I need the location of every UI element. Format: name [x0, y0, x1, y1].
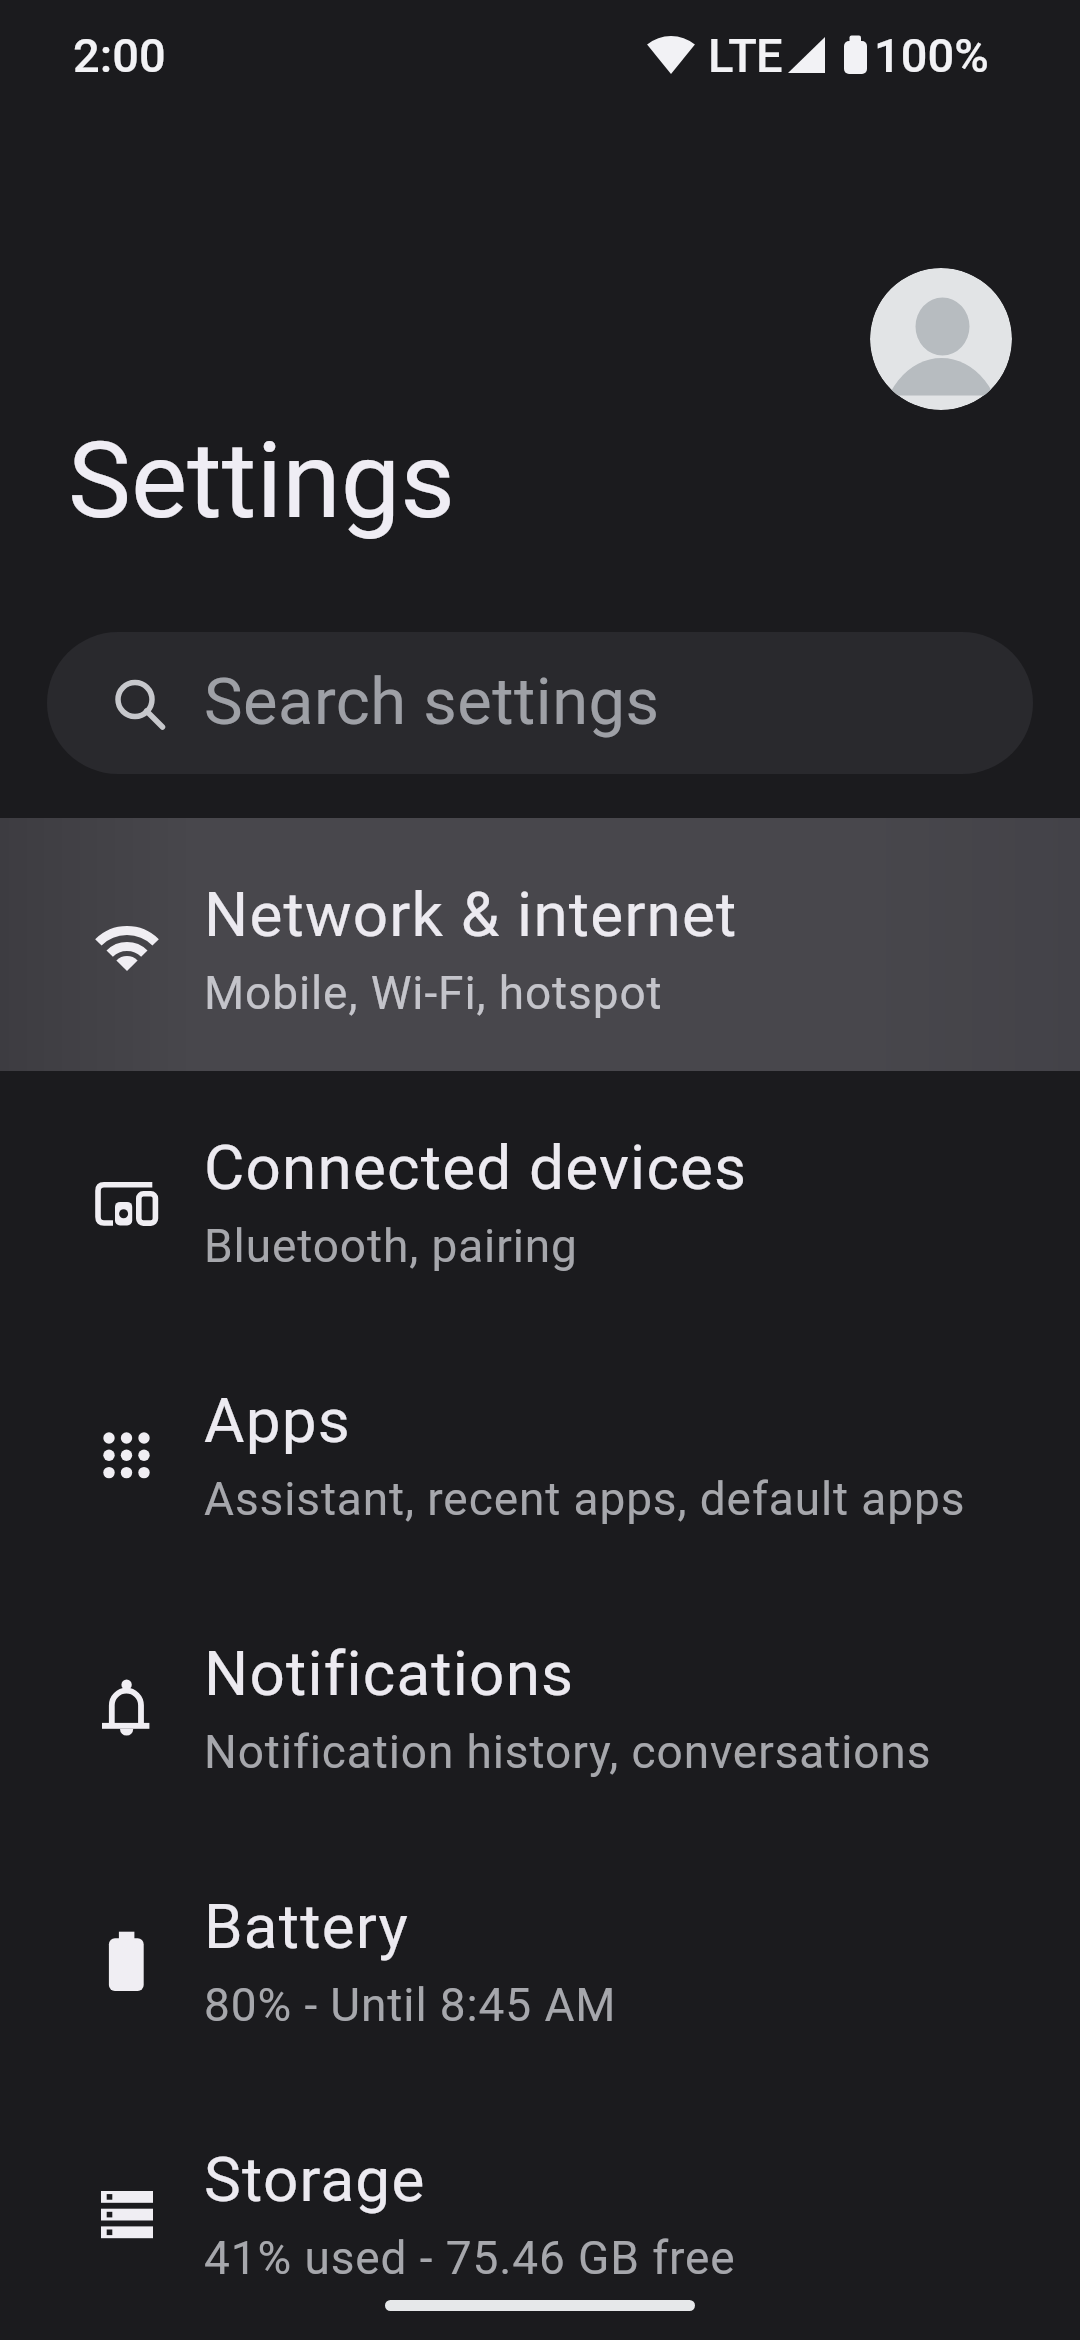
- button[interactable]: Storage: [0, 2083, 1080, 2336]
- staticText: Storage: [204, 2143, 426, 2216]
- staticText: 100%: [874, 28, 989, 83]
- staticText: Battery: [204, 1890, 410, 1963]
- staticText: 2:00: [73, 28, 166, 83]
- staticText: Notification history, conversations: [204, 1725, 932, 1779]
- staticText: 41% used - 75.46 GB free: [204, 2231, 736, 2285]
- staticText: Settings: [68, 419, 456, 543]
- staticText: Apps: [204, 1384, 351, 1457]
- staticText: LTE: [708, 28, 783, 83]
- button[interactable]: Notifications: [0, 1577, 1080, 1830]
- staticText: Notifications: [204, 1637, 575, 1710]
- button[interactable]: Battery: [0, 1830, 1080, 2083]
- staticText: Bluetooth, pairing: [204, 1219, 578, 1273]
- staticText: Network & internet: [204, 878, 738, 951]
- button[interactable]: Search settings: [47, 632, 1033, 774]
- staticText: Assistant, recent apps, default apps: [204, 1472, 966, 1526]
- button[interactable]: [870, 268, 1012, 410]
- button[interactable]: Network & internet: [0, 818, 1080, 1071]
- button[interactable]: Apps: [0, 1324, 1080, 1577]
- staticText: Mobile, Wi-Fi, hotspot: [204, 966, 663, 1020]
- staticText: 80% - Until 8:45 AM: [204, 1978, 617, 2032]
- staticText: Connected devices: [204, 1131, 748, 1204]
- button[interactable]: Connected devices: [0, 1071, 1080, 1324]
- staticText: Search settings: [204, 664, 660, 740]
